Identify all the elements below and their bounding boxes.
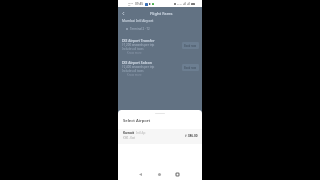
button[interactable]: IXE Airport Saloon [118,60,202,73]
staticText: ₹ 386.00 [185,134,198,138]
staticText: Book now [184,66,197,70]
staticText: Terminal 2 · T2 [130,27,150,31]
staticText: Kuwait [123,131,135,135]
button[interactable]: IXE Airport Transfer [118,38,202,51]
staticText: Mumbai Intl Airport [122,18,154,22]
staticText: 4G [128,4,131,6]
staticText: Includes all taxes [122,47,144,51]
staticText: ₹2,400 onwards per trip [122,65,155,69]
button[interactable]: Navigate up [120,10,126,16]
button[interactable]: Back [136,170,144,178]
staticText: Flight Fares [150,11,173,16]
staticText: Know more [127,51,142,55]
button[interactable]: Kuwait [118,129,202,144]
staticText: Book now [184,44,197,48]
staticText: Includes all taxes [122,69,144,73]
staticText: KWI - Kwt [123,136,136,140]
staticText: IXE Airport Saloon [122,60,152,64]
staticText: Select Airport [123,118,151,124]
staticText: ₹1,200 onwards per trip [122,43,155,47]
button[interactable]: Home [155,170,163,178]
staticText: IXE Airport Transfer [122,38,155,42]
staticText: VoLTE [128,2,134,4]
staticText: Intl Ap [136,131,146,135]
staticText: 09:45 [135,2,144,6]
staticText: Know more [127,73,142,77]
button[interactable]: Recent apps [173,170,181,178]
staticText: 21% [177,2,182,5]
